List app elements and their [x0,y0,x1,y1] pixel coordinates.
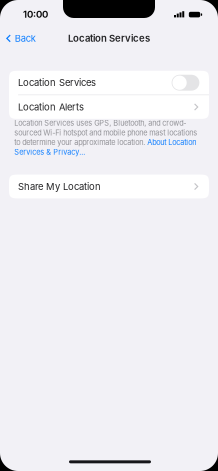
staticText: Location Services uses GPS, Bluetooth, a… [14,119,186,127]
staticText: sourced Wi-Fi hotspot and mobile phone m… [14,128,197,137]
staticText: Share My Location [18,181,101,192]
button[interactable]: Back [0,28,42,48]
button[interactable]: Location Alerts [9,95,209,119]
staticText: Location Alerts [18,101,84,113]
staticText: Location Services [18,77,96,88]
button[interactable]: Share My Location [9,175,209,198]
button[interactable]: Location Services [9,71,209,94]
staticText: About Location [147,138,196,147]
staticText: to determine your approximate location. [14,138,147,147]
staticText: Location Services [68,33,150,44]
staticText: Back [15,33,36,44]
staticText: 10:00 [23,8,48,20]
staticText: Services & Privacy... [14,148,85,156]
